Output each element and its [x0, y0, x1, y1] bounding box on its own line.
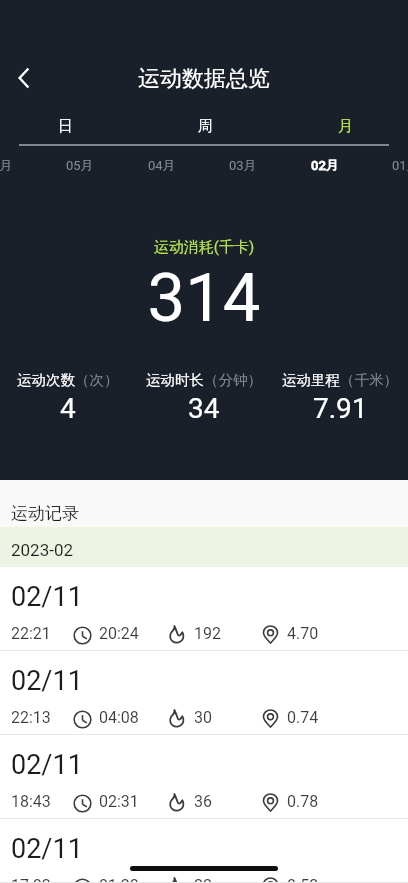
staticText: 02/11: [11, 833, 83, 865]
staticText: 314: [0, 259, 408, 338]
staticText: 运动次数: [17, 371, 75, 389]
staticText: 20:24: [99, 624, 139, 643]
button[interactable]: 2023-02: [0, 527, 408, 567]
staticText: 06月: [0, 157, 13, 173]
staticText: （分钟）: [204, 371, 262, 389]
staticText: 周: [198, 117, 213, 136]
staticText: 34: [188, 392, 220, 425]
staticText: 22: [194, 876, 212, 883]
staticText: 4: [60, 392, 76, 425]
staticText: 2023-02: [11, 540, 74, 560]
button[interactable]: 02/11: [0, 819, 408, 883]
staticText: 0.74: [287, 708, 319, 727]
button[interactable]: 运动记录: [0, 480, 408, 527]
staticText: 04:08: [99, 708, 139, 727]
staticText: 192: [194, 624, 221, 643]
staticText: 02/11: [11, 749, 83, 781]
staticText: 04月: [148, 157, 176, 173]
staticText: 0.52: [287, 876, 319, 883]
staticText: 4.70: [287, 624, 319, 643]
staticText: 22:13: [11, 708, 51, 727]
button[interactable]: 02/11: [0, 735, 408, 819]
staticText: 36: [194, 792, 212, 811]
staticText: 日: [58, 117, 73, 136]
staticText: 运动数据总览: [0, 65, 408, 93]
staticText: 运动时长: [146, 371, 204, 389]
staticText: 7.91: [313, 392, 368, 425]
staticText: （次）: [75, 371, 119, 389]
button[interactable]: 02/11: [0, 567, 408, 651]
staticText: 月: [338, 117, 353, 136]
staticText: 0.78: [287, 792, 319, 811]
button[interactable]: 运动里程: [272, 371, 408, 425]
button[interactable]: 02/11: [0, 651, 408, 735]
staticText: 02:31: [99, 792, 139, 811]
staticText: （千米）: [340, 371, 398, 389]
button[interactable]: 06月: [0, 151, 31, 179]
button[interactable]: 05月: [48, 151, 112, 179]
staticText: 03月: [229, 157, 257, 173]
button[interactable]: 03月: [211, 151, 275, 179]
button[interactable]: 周: [171, 111, 239, 141]
button[interactable]: 月: [311, 111, 379, 141]
staticText: 02/11: [11, 665, 83, 697]
button[interactable]: 日: [31, 111, 99, 141]
button[interactable]: 运动时长: [136, 371, 272, 425]
button[interactable]: 02月: [293, 151, 357, 179]
staticText: 17:02: [11, 876, 51, 883]
staticText: 18:43: [11, 792, 51, 811]
staticText: 02月: [311, 157, 339, 173]
staticText: 30: [194, 708, 212, 727]
button[interactable]: 运动次数: [0, 371, 136, 425]
staticText: 22:21: [11, 624, 51, 643]
staticText: 运动里程: [282, 371, 340, 389]
button[interactable]: Back: [3, 57, 45, 99]
staticText: 01:20: [99, 876, 139, 883]
staticText: 02/11: [11, 581, 83, 613]
staticText: 运动消耗(千卡): [0, 238, 408, 257]
button[interactable]: 04月: [130, 151, 194, 179]
staticText: 05月: [66, 157, 94, 173]
button[interactable]: 01月: [374, 151, 408, 179]
staticText: 运动记录: [11, 503, 79, 524]
staticText: 01月: [392, 157, 408, 173]
